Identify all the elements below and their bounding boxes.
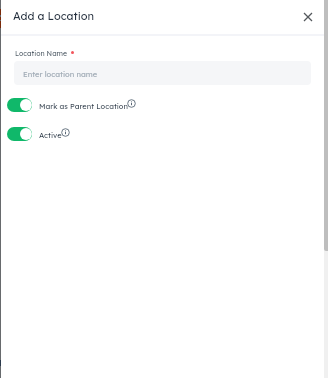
button[interactable]: Close dialog bbox=[300, 9, 316, 25]
staticText: Location Name bbox=[15, 49, 68, 58]
staticText: Add a Location bbox=[13, 9, 95, 23]
staticText: Active bbox=[39, 130, 62, 139]
button[interactable]: Mark as Parent Location bbox=[7, 98, 137, 112]
staticText: Mark as Parent Location bbox=[39, 101, 128, 110]
staticText: Enter location name bbox=[23, 69, 98, 78]
button[interactable]: Active bbox=[7, 127, 71, 141]
button[interactable]: Enter location name bbox=[14, 61, 311, 85]
